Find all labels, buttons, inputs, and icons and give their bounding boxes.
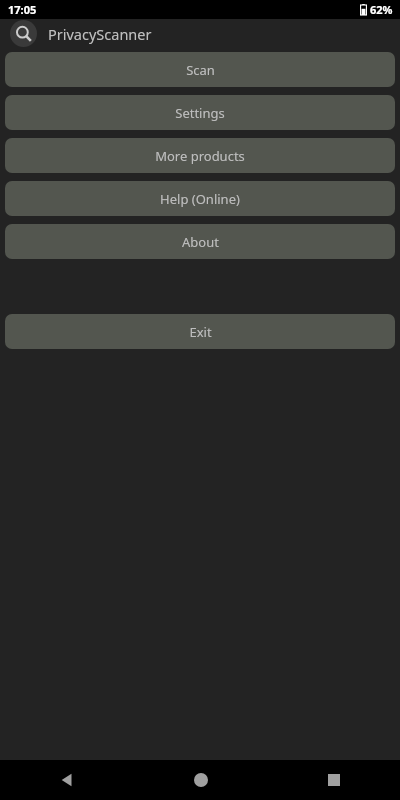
button[interactable]: About (5, 224, 395, 259)
staticText: About (182, 233, 219, 251)
staticText: More products (155, 147, 245, 165)
staticText: Exit (189, 323, 212, 341)
staticText: Help (Online) (160, 190, 240, 208)
staticText: Scan (186, 61, 215, 79)
staticText: 62% (370, 2, 393, 17)
button[interactable]: Back (0, 760, 133, 800)
button[interactable]: Help (Online) (5, 181, 395, 216)
staticText: 17:05 (8, 2, 37, 17)
button[interactable]: More products (5, 138, 395, 173)
button[interactable]: Exit (5, 314, 395, 349)
staticText: PrivacyScanner (48, 24, 152, 44)
button[interactable]: Settings (5, 95, 395, 130)
staticText: Settings (175, 104, 225, 122)
button[interactable]: Recent apps (267, 760, 400, 800)
button[interactable]: Home (134, 760, 267, 800)
button[interactable]: Scan (5, 52, 395, 87)
